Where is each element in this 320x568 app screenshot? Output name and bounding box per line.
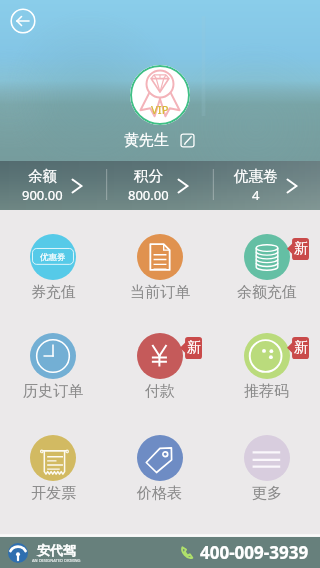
button[interactable]: 优惠券 xyxy=(0,227,106,306)
button[interactable]: 积分 xyxy=(106,161,213,210)
staticText: 4 xyxy=(252,186,260,204)
staticText: 新 xyxy=(294,240,308,258)
staticText: 价格表 xyxy=(137,484,182,503)
staticText: 更多 xyxy=(252,484,282,503)
staticText: 黄先生 xyxy=(124,131,169,150)
button[interactable]: 历史订单 xyxy=(0,326,106,405)
staticText: 800.00 xyxy=(128,186,169,204)
button[interactable]: 更多 xyxy=(213,428,320,507)
button[interactable]: 当前订单 xyxy=(106,227,213,306)
button[interactable]: 安代驾 xyxy=(8,542,81,563)
button[interactable]: 400-009-3939 xyxy=(180,541,309,564)
staticText: VIP xyxy=(151,102,169,117)
button[interactable]: Back xyxy=(10,8,36,34)
staticText: 推荐码 xyxy=(244,382,289,401)
button[interactable]: 余额 xyxy=(0,161,106,210)
button[interactable]: 新 xyxy=(213,326,320,405)
staticText: 券充值 xyxy=(31,283,76,302)
button[interactable]: 新 xyxy=(106,326,213,405)
button[interactable]: 价格表 xyxy=(106,428,213,507)
staticText: 余额 xyxy=(28,167,57,185)
staticText: 新 xyxy=(294,339,308,357)
button[interactable]: Avatar xyxy=(130,65,190,125)
staticText: 优惠卷 xyxy=(234,167,278,185)
staticText: 历史订单 xyxy=(23,382,83,401)
button[interactable]: 开发票 xyxy=(0,428,106,507)
staticText: 积分 xyxy=(134,167,163,185)
staticText: 安代驾 xyxy=(37,542,76,558)
staticText: 900.00 xyxy=(22,186,63,204)
button[interactable]: Edit name xyxy=(179,132,196,149)
button[interactable]: 优惠卷 xyxy=(213,161,320,210)
staticText: 开发票 xyxy=(31,484,76,503)
button[interactable]: 新 xyxy=(213,227,320,306)
staticText: AN DESIGNATED DRIVING xyxy=(32,558,81,563)
staticText: 新 xyxy=(187,339,201,357)
staticText: 付款 xyxy=(145,382,175,401)
staticText: 当前订单 xyxy=(130,283,190,302)
staticText: 优惠券 xyxy=(40,252,66,263)
staticText: 400-009-3939 xyxy=(200,541,309,564)
staticText: 余额充值 xyxy=(237,283,297,302)
